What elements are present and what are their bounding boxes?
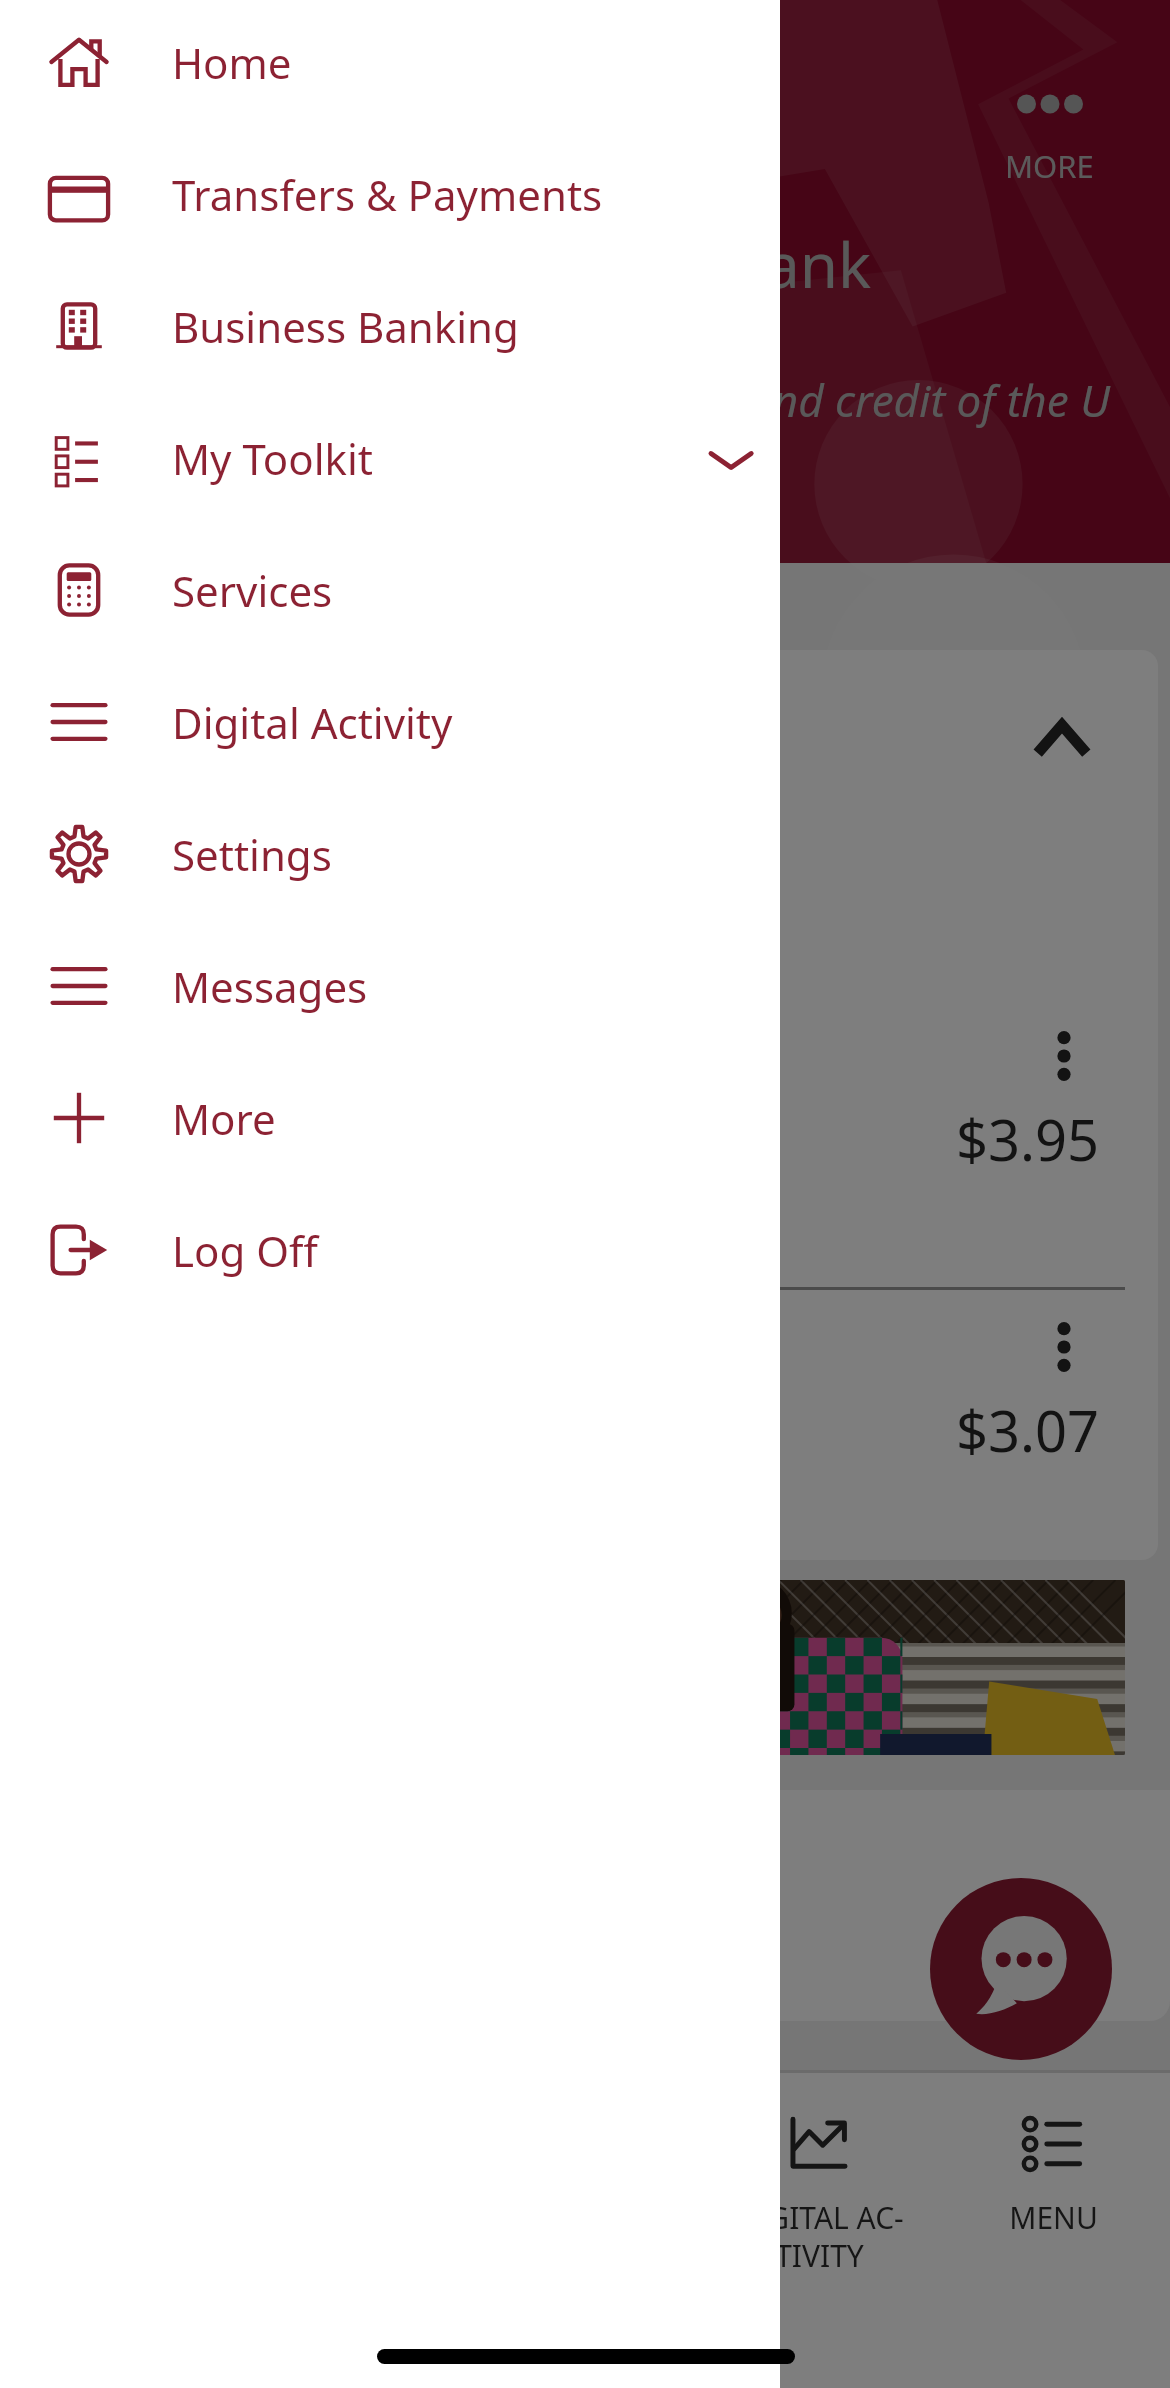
button[interactable]: DIGITAL AC- TIVITY [702, 2073, 936, 2276]
button[interactable]: Settings [0, 788, 780, 920]
staticText: $3.95 [956, 1101, 1100, 1177]
staticText: Home [172, 34, 292, 91]
button[interactable]: Checking [12, 812, 1158, 1287]
button[interactable]: Digital Activity [0, 656, 780, 788]
staticText: $3.07 [956, 1392, 1100, 1468]
button[interactable]: Messages [0, 920, 780, 1052]
staticText: Deposits are backed by the full faith an… [40, 370, 1110, 430]
staticText: Available balance [45, 1112, 339, 1161]
staticText: Business Banking [172, 298, 519, 355]
staticText: Checking [45, 1033, 244, 1096]
staticText: My Toolkit [172, 430, 373, 487]
button[interactable]: Services [0, 524, 780, 656]
staticText: MORE [1005, 145, 1094, 187]
button[interactable]: MENU [936, 2073, 1170, 2238]
staticText: MENU [1009, 2197, 1098, 2238]
button[interactable]: Chat [930, 1878, 1112, 2060]
button[interactable]: Home [0, 0, 780, 128]
staticText: Settings [172, 826, 332, 883]
staticText: Services [172, 562, 333, 619]
button[interactable]: My Toolkit [0, 392, 780, 524]
staticText: Log Off [172, 1222, 318, 1279]
staticText: Digital Activity [172, 694, 453, 751]
button[interactable]: Account options [1028, 1033, 1100, 1079]
button[interactable]: Enroll today for free promotion [12, 1580, 1125, 1755]
button[interactable]: Business Banking [0, 260, 780, 392]
button[interactable]: More [975, 94, 1124, 187]
staticText: Good afternoon — City Bank [40, 222, 872, 306]
staticText: Messages [172, 958, 368, 1015]
staticText: Deposit Accounts [45, 697, 453, 765]
button[interactable]: Savings [12, 1290, 1158, 1560]
staticText: More [172, 1090, 276, 1147]
button[interactable]: Account options [1028, 1324, 1100, 1370]
staticText: Transfers & Payments [172, 166, 603, 223]
button[interactable]: Log Off [0, 1184, 780, 1316]
button[interactable]: Transfers & Payments [0, 128, 780, 260]
button[interactable]: Deposit Accounts [12, 650, 1158, 812]
staticText: DIGITAL AC- TIVITY [735, 2197, 904, 2276]
button[interactable]: More [0, 1052, 780, 1184]
